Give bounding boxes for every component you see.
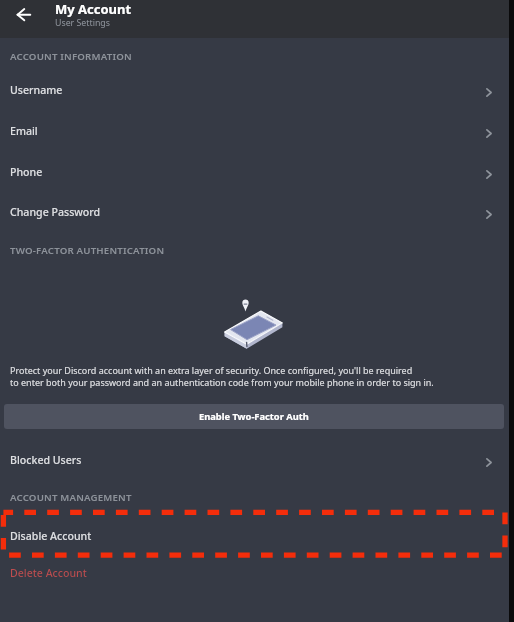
button[interactable]: ACCOUNT INFORMATION [0,44,509,68]
staticText: to enter both your password and an authe… [10,376,434,388]
button[interactable]: Delete Account [0,553,509,593]
staticText: My Account [55,0,132,18]
button[interactable]: Change Password [0,192,509,232]
button[interactable]: Back [6,3,30,27]
staticText: Change Password [10,205,101,219]
button[interactable]: Disable Account [0,516,509,556]
button[interactable]: Blocked Users [0,440,509,480]
staticText: Delete Account [10,566,87,580]
staticText: Email [10,124,38,138]
staticText: Phone [10,165,43,179]
button[interactable]: TWO-FACTOR AUTHENTICATION [0,238,509,262]
staticText: User Settings [55,17,110,29]
staticText: ACCOUNT INFORMATION [10,50,132,63]
staticText: TWO-FACTOR AUTHENTICATION [10,244,165,257]
staticText: ACCOUNT MANAGEMENT [10,491,132,504]
staticText: Blocked Users [10,453,82,467]
staticText: Protect your Discord account with an ext… [10,364,413,376]
button[interactable]: Username [0,70,509,110]
button[interactable]: Enable Two-Factor Auth [4,404,504,429]
button[interactable]: ACCOUNT MANAGEMENT [0,485,509,509]
button[interactable]: Email [0,111,509,151]
staticText: Username [10,83,63,97]
staticText: Enable Two-Factor Auth [199,410,309,423]
staticText: Disable Account [10,529,92,543]
button[interactable]: Phone [0,152,509,192]
